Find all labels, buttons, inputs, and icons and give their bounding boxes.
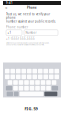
staticText: +1 (555) 555-5555 [6, 37, 35, 40]
staticText: < [5, 5, 7, 10]
staticText: Phone [27, 6, 37, 9]
staticText: We'll send you a code via SMS. Message a… [6, 42, 49, 46]
button[interactable]: Back [3, 5, 9, 10]
staticText: Trust us, we need to verify your phone n… [6, 12, 56, 23]
staticText: FIG. 59 [24, 106, 37, 111]
staticText: +1 [7, 31, 11, 34]
staticText: Phone number [6, 25, 28, 29]
staticText: Number [25, 31, 36, 34]
staticText: 9:41 [6, 1, 13, 5]
